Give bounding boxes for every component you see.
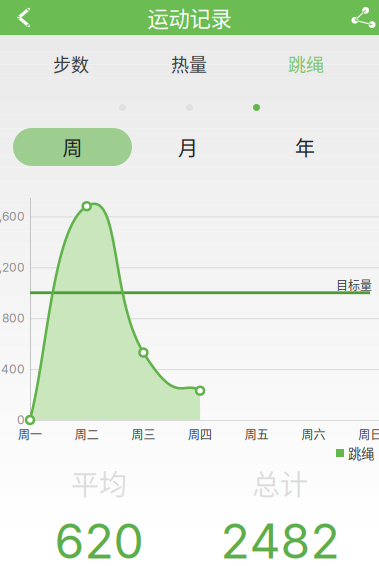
button[interactable]: Back <box>0 0 44 35</box>
staticText: 月 <box>178 132 198 161</box>
staticText: 周四 <box>188 425 212 443</box>
staticText: 周五 <box>245 425 269 443</box>
staticText: 跳绳 <box>348 443 374 463</box>
staticText: 步数 <box>53 51 89 77</box>
staticText: 周六 <box>301 425 325 443</box>
staticText: 1,200 <box>0 260 25 274</box>
staticText: 年 <box>295 132 315 161</box>
staticText: 620 <box>54 512 143 566</box>
staticText: 1,600 <box>0 209 25 224</box>
staticText: 跳绳 <box>288 51 324 77</box>
button[interactable]: 跳绳 <box>251 36 361 92</box>
button[interactable]: 步数 <box>16 36 126 92</box>
button[interactable]: 月 <box>128 128 247 166</box>
staticText: 平均 <box>71 463 127 503</box>
staticText: 800 <box>2 311 25 325</box>
staticText: 周二 <box>75 425 99 443</box>
staticText: 运动记录 <box>147 2 231 33</box>
button[interactable]: Share <box>337 0 379 35</box>
staticText: 总计 <box>252 463 308 503</box>
staticText: 0 <box>17 413 25 427</box>
staticText: 周日 <box>358 425 379 443</box>
staticText: 400 <box>1 362 25 376</box>
button[interactable]: 年 <box>245 128 364 166</box>
button[interactable]: 周 <box>13 128 132 166</box>
staticText: 周一 <box>18 425 42 443</box>
staticText: 目标量 <box>336 276 372 293</box>
staticText: 周 <box>62 132 82 161</box>
staticText: 周三 <box>131 425 155 443</box>
staticText: 2482 <box>220 512 339 566</box>
button[interactable]: 热量 <box>134 36 244 92</box>
staticText: 热量 <box>171 51 207 77</box>
